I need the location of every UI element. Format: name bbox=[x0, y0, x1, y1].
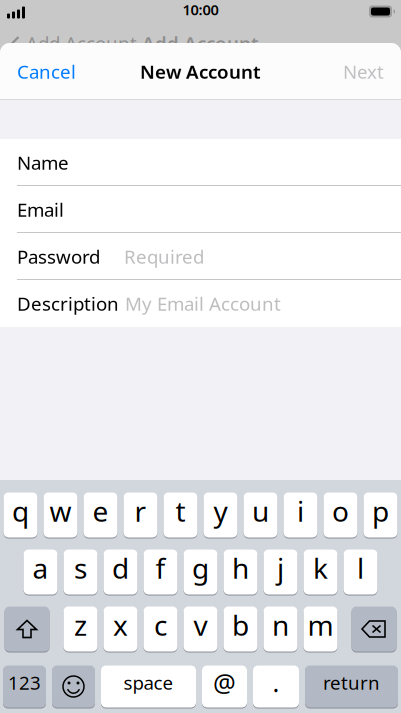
staticText: m bbox=[307, 606, 333, 644]
staticText: g bbox=[192, 549, 209, 587]
button[interactable]: b bbox=[223, 606, 257, 652]
staticText: p bbox=[372, 492, 389, 530]
staticText: w bbox=[49, 492, 71, 530]
staticText: space bbox=[123, 670, 173, 695]
staticText: b bbox=[232, 606, 249, 644]
staticText: @ bbox=[213, 666, 236, 699]
staticText: return bbox=[323, 670, 380, 695]
staticText: Password bbox=[17, 244, 100, 269]
staticText: l bbox=[357, 549, 364, 587]
button[interactable]: f bbox=[143, 549, 177, 595]
button[interactable]: u bbox=[243, 492, 277, 538]
button[interactable]: space bbox=[101, 665, 196, 708]
staticText: a bbox=[32, 549, 48, 587]
button[interactable]: return bbox=[305, 665, 398, 708]
staticText: y bbox=[213, 492, 227, 530]
button[interactable]: y bbox=[203, 492, 237, 538]
staticText: Email bbox=[17, 197, 64, 222]
button[interactable]: q bbox=[3, 492, 37, 538]
staticText: v bbox=[193, 606, 207, 644]
button[interactable]: o bbox=[323, 492, 357, 538]
button[interactable]: t bbox=[163, 492, 197, 538]
staticText: Next bbox=[343, 59, 384, 84]
button[interactable]: a bbox=[23, 549, 57, 595]
staticText: t bbox=[175, 492, 185, 530]
button[interactable]: x bbox=[103, 606, 137, 652]
staticText: u bbox=[252, 492, 269, 530]
staticText: h bbox=[232, 549, 249, 587]
button[interactable]: n bbox=[263, 606, 297, 652]
staticText: 123 bbox=[8, 670, 41, 695]
button[interactable]: w bbox=[43, 492, 77, 538]
button[interactable]: Cancel bbox=[0, 43, 93, 100]
button[interactable]: i bbox=[283, 492, 317, 538]
button[interactable]: Name bbox=[0, 139, 401, 186]
staticText: i bbox=[297, 492, 304, 530]
button[interactable]: Delete bbox=[351, 606, 396, 652]
staticText: k bbox=[313, 549, 328, 587]
button[interactable]: d bbox=[103, 549, 137, 595]
button[interactable]: Shift bbox=[4, 606, 49, 652]
staticText: d bbox=[112, 549, 129, 587]
button[interactable]: Next bbox=[326, 43, 401, 100]
button[interactable]: @ bbox=[202, 665, 247, 708]
staticText: Add Account bbox=[142, 31, 259, 55]
button[interactable]: p bbox=[363, 492, 397, 538]
staticText: z bbox=[74, 606, 87, 644]
staticText: Add Account bbox=[26, 31, 137, 55]
staticText: 10:00 bbox=[182, 0, 218, 19]
staticText: x bbox=[113, 606, 128, 644]
button[interactable]: c bbox=[143, 606, 177, 652]
staticText: q bbox=[12, 492, 29, 530]
button[interactable]: h bbox=[223, 549, 257, 595]
button[interactable]: Email bbox=[0, 186, 401, 233]
staticText: c bbox=[154, 606, 167, 644]
staticText: o bbox=[332, 492, 349, 530]
staticText: Cancel bbox=[17, 59, 76, 84]
staticText: . bbox=[272, 666, 279, 699]
staticText: e bbox=[92, 492, 108, 530]
staticText: New Account bbox=[140, 59, 261, 84]
staticText: Description bbox=[17, 291, 119, 316]
button[interactable]: r bbox=[123, 492, 157, 538]
button[interactable]: Emoji bbox=[52, 665, 95, 708]
button[interactable]: z bbox=[63, 606, 97, 652]
button[interactable]: l bbox=[343, 549, 377, 595]
staticText: Required bbox=[124, 244, 204, 269]
staticText: My Email Account bbox=[125, 291, 281, 316]
button[interactable]: g bbox=[183, 549, 217, 595]
staticText: n bbox=[272, 606, 289, 644]
button[interactable]: k bbox=[303, 549, 337, 595]
button[interactable]: m bbox=[303, 606, 337, 652]
staticText: f bbox=[155, 549, 165, 587]
staticText: s bbox=[74, 549, 87, 587]
button[interactable]: 123 bbox=[3, 665, 46, 708]
button[interactable]: Password bbox=[0, 233, 401, 280]
button[interactable]: . bbox=[253, 665, 299, 708]
button[interactable]: s bbox=[63, 549, 97, 595]
button[interactable]: v bbox=[183, 606, 217, 652]
button[interactable]: Description bbox=[0, 280, 401, 327]
staticText: r bbox=[134, 492, 146, 530]
button[interactable]: j bbox=[263, 549, 297, 595]
button[interactable]: e bbox=[83, 492, 117, 538]
staticText: j bbox=[277, 549, 284, 587]
staticText: Name bbox=[17, 150, 69, 175]
